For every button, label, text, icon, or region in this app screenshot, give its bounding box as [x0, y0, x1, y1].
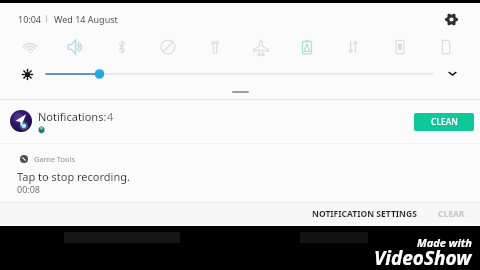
- staticText: 10:04: [18, 13, 42, 25]
- staticText: Wed 14 August: [54, 13, 118, 25]
- button[interactable]: Battery: [388, 35, 412, 59]
- button[interactable]: Game Tools: [0, 144, 480, 202]
- button[interactable]: CLEAN: [414, 113, 474, 131]
- button[interactable]: Settings: [444, 12, 459, 27]
- button[interactable]: Power saving: [295, 35, 319, 59]
- button[interactable]: CLEAR: [433, 202, 470, 223]
- staticText: Notifications:: [38, 109, 107, 124]
- staticText: Made with: [417, 235, 472, 250]
- staticText: Game Tools: [34, 154, 76, 164]
- button[interactable]: Sound: [64, 35, 88, 59]
- button[interactable]: Wi-Fi: [18, 35, 42, 59]
- staticText: CLEAR: [438, 208, 465, 217]
- button[interactable]: NOTIFICATION SETTINGS: [307, 202, 422, 223]
- staticText: CLEAN: [431, 116, 458, 128]
- staticText: 4: [107, 109, 114, 124]
- staticText: VideoShow: [374, 245, 472, 270]
- button[interactable]: Bluetooth: [110, 35, 134, 59]
- button[interactable]: Flashlight: [203, 35, 227, 59]
- button[interactable]: Mobile data: [341, 35, 365, 59]
- staticText: NOTIFICATION SETTINGS: [312, 208, 417, 217]
- staticText: 00:08: [17, 183, 41, 195]
- button[interactable]: Expand quick settings: [446, 67, 459, 80]
- button[interactable]: Screen: [434, 35, 458, 59]
- button[interactable]: Airplane mode: [249, 35, 273, 59]
- staticText: Tap to stop recording.: [17, 169, 130, 184]
- button[interactable]: Do not disturb: [156, 35, 180, 59]
